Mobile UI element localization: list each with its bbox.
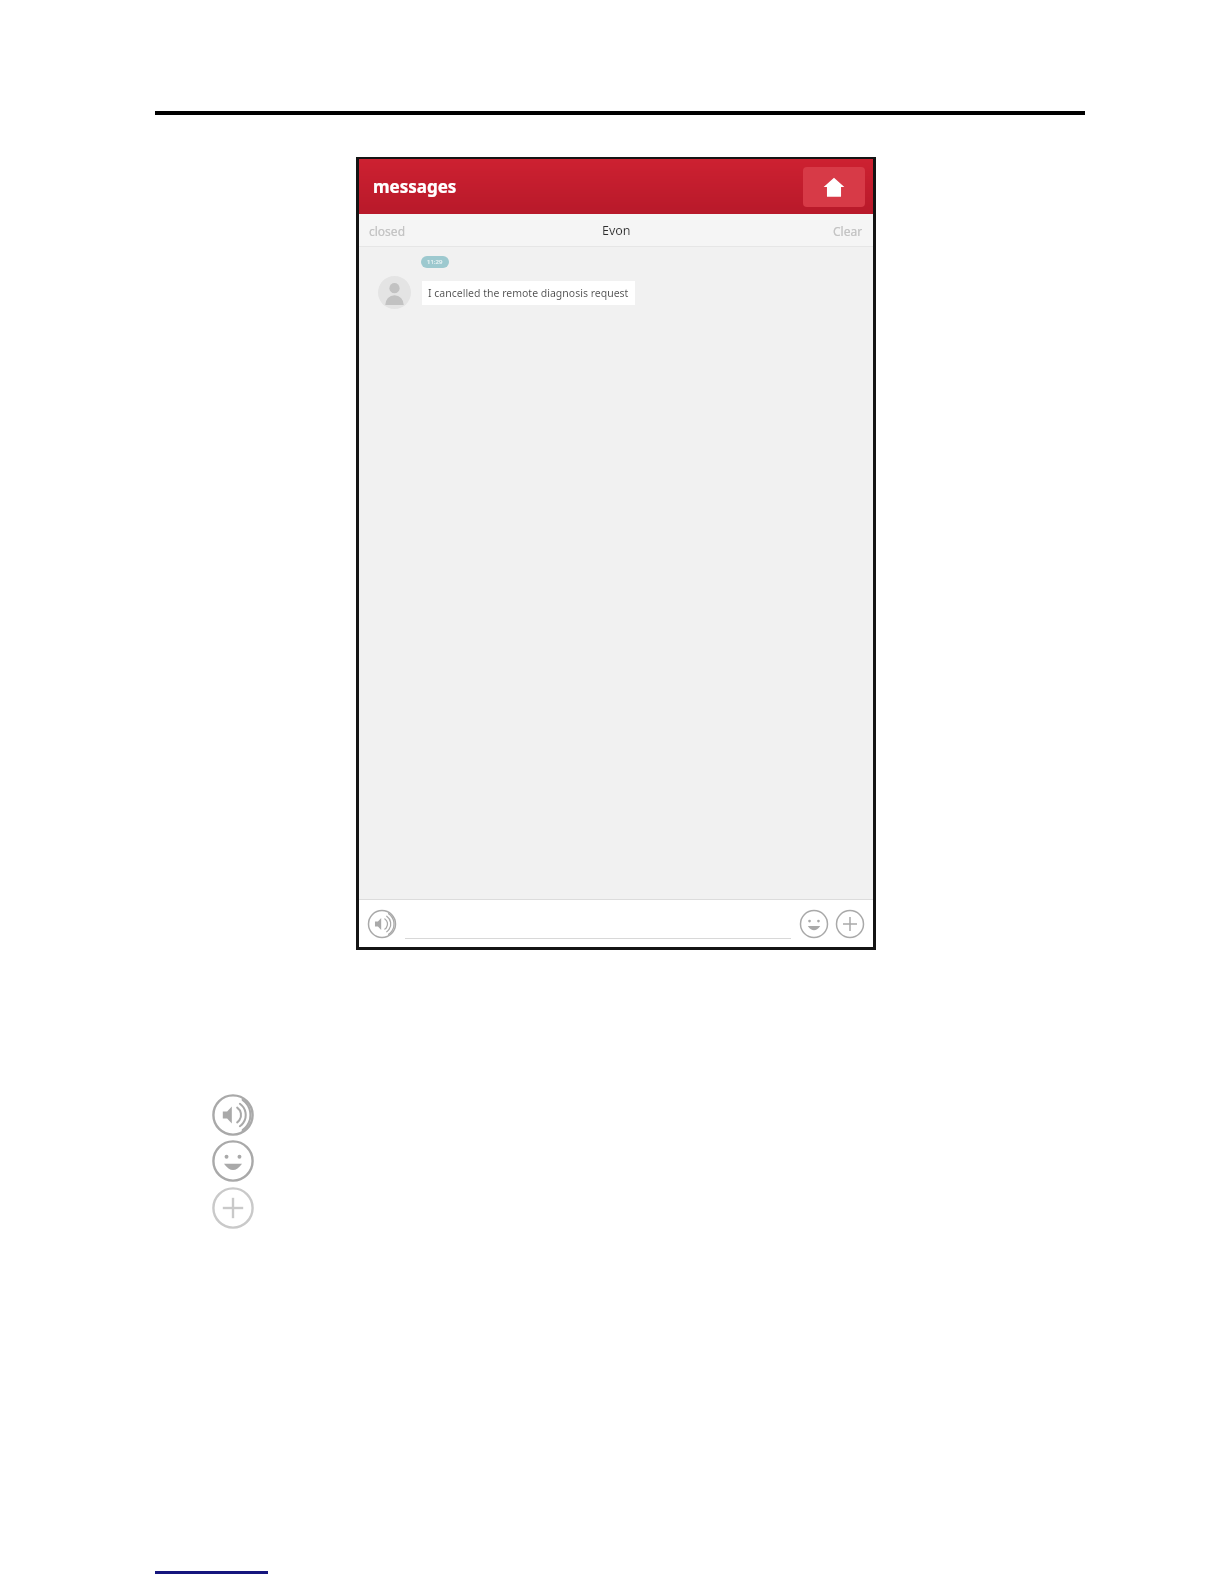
staticText: Clear [833,223,863,239]
button[interactable]: I cancelled the remote diagnosis request [428,286,629,300]
button[interactable]: Add attachment [835,909,865,939]
button[interactable]: Contact avatar [378,276,411,309]
button[interactable]: Emoji [799,909,829,939]
button[interactable]: Home [803,167,865,207]
button[interactable]: closed [369,214,406,247]
button[interactable] [405,909,791,939]
button[interactable]: Voice message [367,909,397,939]
button[interactable]: Clear [833,214,863,247]
staticText: 11:29 [427,258,443,266]
staticText: messages [373,175,457,198]
staticText: I cancelled the remote diagnosis request [428,286,629,300]
staticText: Evon [602,222,631,239]
staticText: closed [369,223,406,239]
